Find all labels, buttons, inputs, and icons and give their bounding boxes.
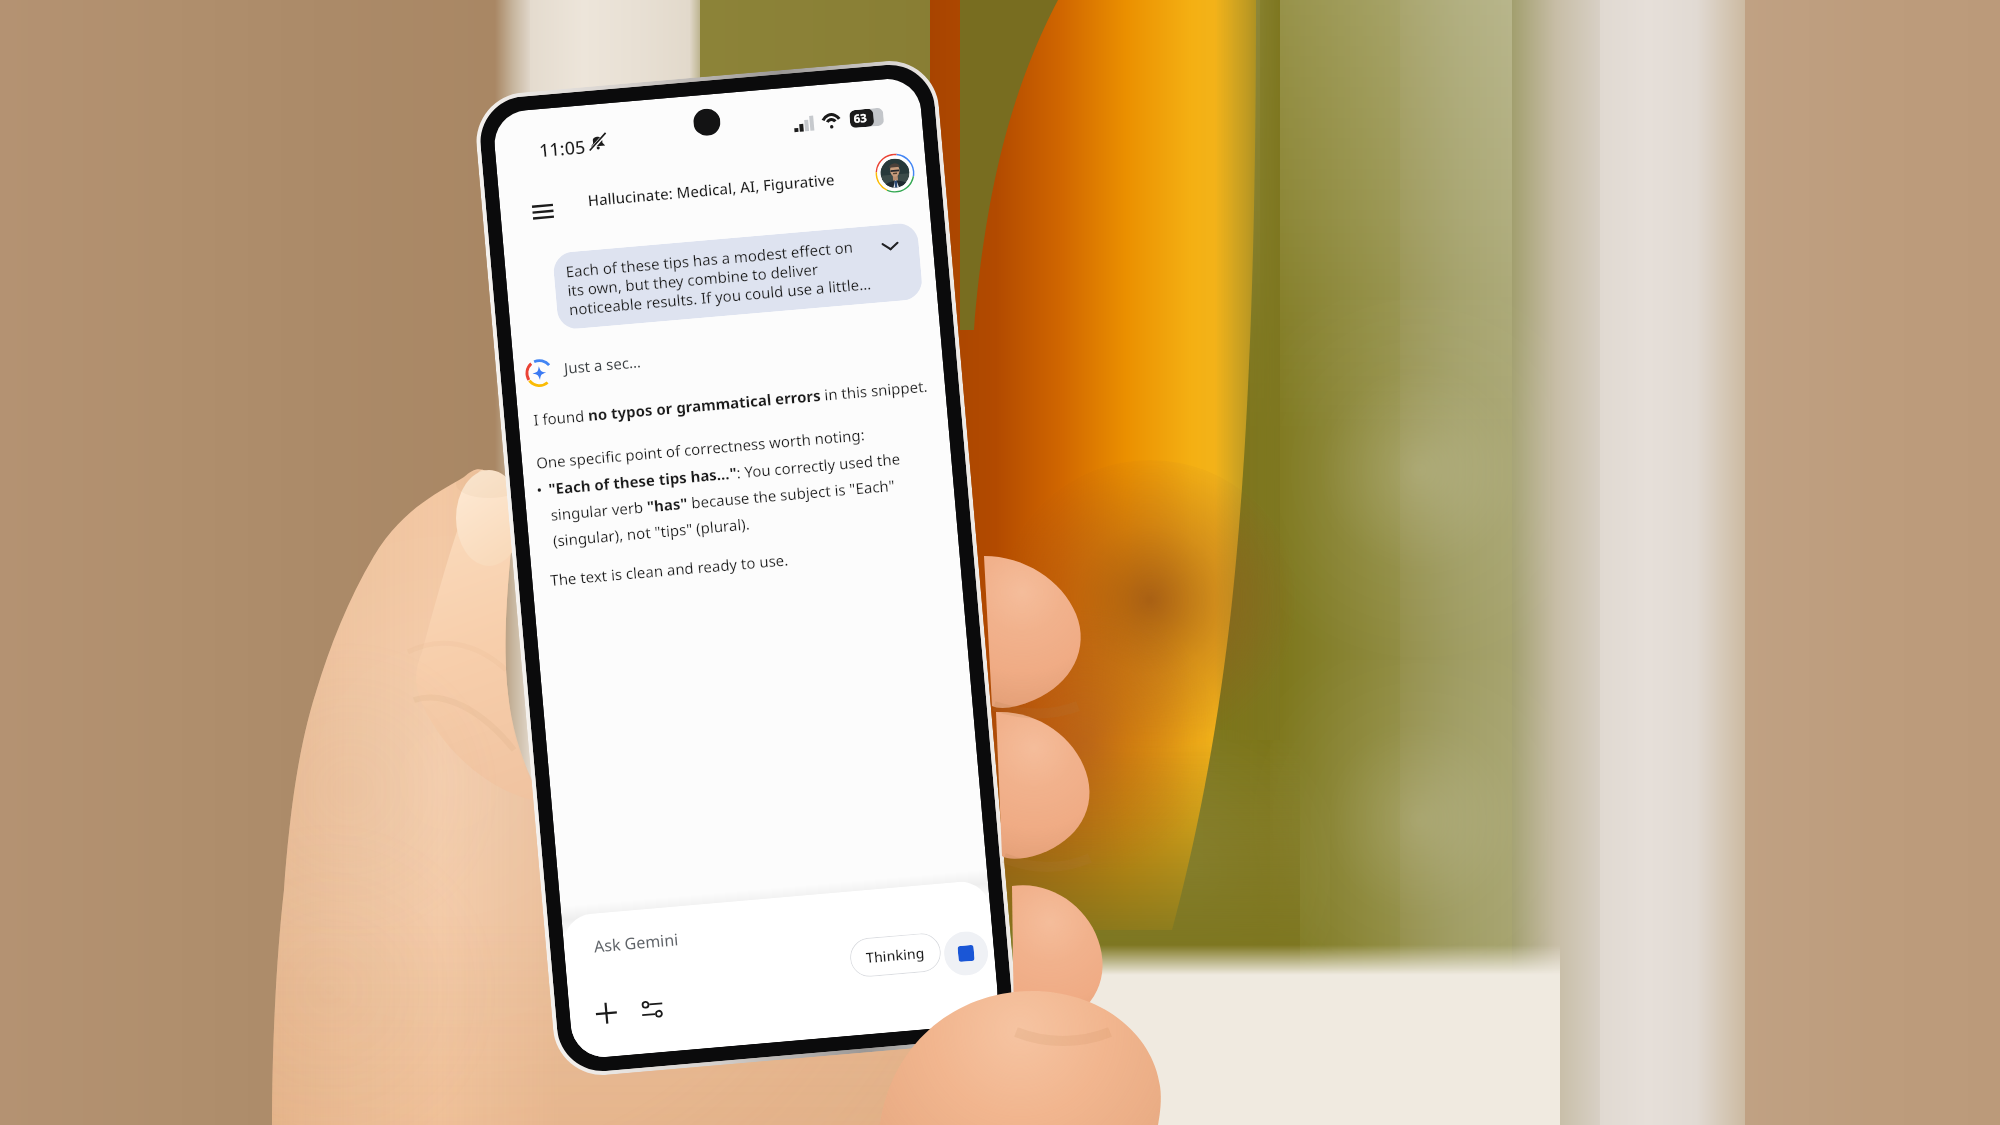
staticText: 11:05 [538, 134, 587, 163]
staticText: 63 [853, 110, 868, 127]
button[interactable]: Menu [519, 187, 566, 235]
staticText: • [536, 479, 543, 500]
button[interactable]: Account [873, 151, 916, 194]
button[interactable]: Expand message [874, 230, 905, 260]
button[interactable]: Thinking [848, 932, 942, 978]
staticText: One specific point of correctness worth … [535, 424, 866, 473]
staticText: The text is clean and ready to use. [549, 549, 789, 590]
staticText: Ask Gemini [593, 928, 680, 957]
staticText: Just a sec… [563, 351, 642, 378]
staticText: I found no typos or grammatical errors i… [533, 376, 929, 430]
staticText: Hallucinate: Medical, AI, Figurative [587, 169, 836, 210]
staticText: Thinking [865, 943, 926, 967]
button[interactable]: Tools [632, 989, 671, 1028]
staticText: "Each of these tips has…": You correctly… [548, 444, 956, 551]
button[interactable]: Stop [942, 930, 990, 977]
staticText: Each of these tips has a modest effect o… [565, 235, 872, 320]
button[interactable]: Each of these tips has a modest effect o… [552, 222, 923, 330]
button[interactable]: Add attachment [586, 993, 625, 1032]
